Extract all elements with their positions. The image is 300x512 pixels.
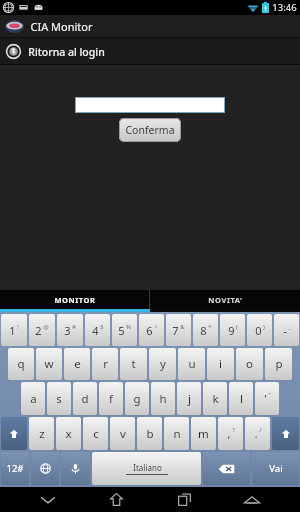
button[interactable]: o	[236, 348, 263, 380]
button[interactable]: Menu	[232, 487, 272, 512]
button[interactable]: Backspace	[203, 452, 250, 485]
staticText: *	[208, 323, 212, 331]
button[interactable]: f	[99, 382, 123, 415]
staticText: 9	[228, 323, 235, 338]
button[interactable]: Home	[96, 487, 136, 512]
button[interactable]: -	[274, 314, 299, 346]
button[interactable]: 3	[57, 314, 83, 346]
button[interactable]: n	[164, 417, 189, 450]
staticText: c	[93, 426, 99, 442]
button[interactable]: c	[83, 417, 108, 450]
staticText: _	[288, 323, 291, 331]
button[interactable]: '	[255, 382, 279, 415]
button[interactable]: q	[8, 348, 34, 380]
staticText: Ritorna al login	[28, 45, 105, 59]
staticText: 5	[118, 323, 125, 338]
staticText: d	[81, 391, 89, 407]
staticText: NOVITA'	[208, 295, 243, 305]
button[interactable]: CIA Monitor	[0, 15, 300, 37]
button[interactable]: NOVITA'	[150, 290, 300, 309]
button[interactable]: s	[47, 382, 71, 415]
staticText: q	[17, 356, 25, 372]
staticText: Italiano	[133, 462, 162, 473]
staticText: 3	[64, 323, 71, 338]
staticText: a	[30, 391, 37, 407]
button[interactable]: v	[110, 417, 135, 450]
button[interactable]: b	[137, 417, 162, 450]
button[interactable]: Shift	[272, 417, 299, 450]
staticText: #	[72, 323, 76, 331]
staticText: -	[283, 323, 287, 338]
button[interactable]: .	[245, 417, 270, 450]
button[interactable]: 1	[1, 314, 27, 346]
button[interactable]: MONITOR	[0, 290, 149, 309]
staticText: v	[120, 426, 126, 442]
button[interactable]: e	[64, 348, 90, 380]
button[interactable]: r	[92, 348, 118, 380]
button[interactable]: Hide keyboard	[28, 487, 68, 512]
button[interactable]: 8	[193, 314, 218, 346]
staticText: 13:46	[272, 1, 297, 14]
staticText: i	[219, 356, 222, 372]
button[interactable]: l	[229, 382, 253, 415]
staticText: b	[146, 426, 154, 442]
button[interactable]: Vai	[252, 452, 299, 485]
button[interactable]: 0	[247, 314, 272, 346]
staticText: s	[56, 391, 62, 407]
button[interactable]: z	[29, 417, 54, 450]
button[interactable]: g	[125, 382, 149, 415]
button[interactable]: a	[21, 382, 45, 415]
staticText: ,	[227, 426, 231, 442]
staticText: p	[275, 356, 283, 372]
button[interactable]: 9	[220, 314, 245, 346]
button[interactable]: i	[207, 348, 234, 380]
button[interactable]: 6	[139, 314, 164, 346]
staticText: ?	[232, 426, 235, 434]
button[interactable]: k	[203, 382, 227, 415]
button[interactable]: Recent apps	[164, 487, 204, 512]
button[interactable]: m	[191, 417, 216, 450]
button[interactable]: Italiano	[92, 452, 201, 485]
button[interactable]: p	[265, 348, 292, 380]
staticText: j	[188, 391, 191, 407]
staticText: '	[264, 391, 267, 407]
staticText: 7	[172, 323, 179, 338]
staticText: $	[100, 323, 104, 331]
button[interactable]	[75, 97, 225, 113]
staticText: z	[39, 426, 45, 442]
button[interactable]: 2	[29, 314, 55, 346]
staticText: Conferma	[125, 123, 175, 137]
button[interactable]: u	[178, 348, 205, 380]
staticText: n	[173, 426, 181, 442]
staticText: l	[240, 391, 243, 407]
button[interactable]: Voice input	[61, 452, 90, 485]
button[interactable]: 4	[85, 314, 110, 346]
staticText: 0	[255, 323, 262, 338]
staticText: CIA Monitor	[30, 19, 93, 34]
button[interactable]: j	[177, 382, 201, 415]
button[interactable]: Ritorna al login	[0, 38, 300, 64]
button[interactable]: h	[151, 382, 175, 415]
button[interactable]: Conferma	[119, 118, 181, 142]
staticText: 2	[35, 323, 42, 338]
staticText: Vai	[269, 462, 283, 475]
staticText: %	[126, 323, 131, 331]
staticText: (	[236, 323, 238, 331]
button[interactable]: 7	[166, 314, 191, 346]
staticText: 4	[92, 323, 99, 338]
button[interactable]: 5	[112, 314, 137, 346]
staticText: )	[263, 323, 265, 331]
button[interactable]: w	[36, 348, 62, 380]
button[interactable]: x	[56, 417, 81, 450]
staticText: w	[44, 356, 54, 372]
button[interactable]: ,	[218, 417, 243, 450]
staticText: m	[198, 426, 209, 442]
button[interactable]: Shift	[1, 417, 27, 450]
button[interactable]: Change language	[31, 452, 59, 485]
button[interactable]: t	[120, 348, 147, 380]
button[interactable]: 12#	[1, 452, 29, 485]
button[interactable]: d	[73, 382, 97, 415]
button[interactable]: y	[149, 348, 176, 380]
staticText: ^	[154, 323, 158, 331]
staticText: u	[188, 356, 196, 372]
